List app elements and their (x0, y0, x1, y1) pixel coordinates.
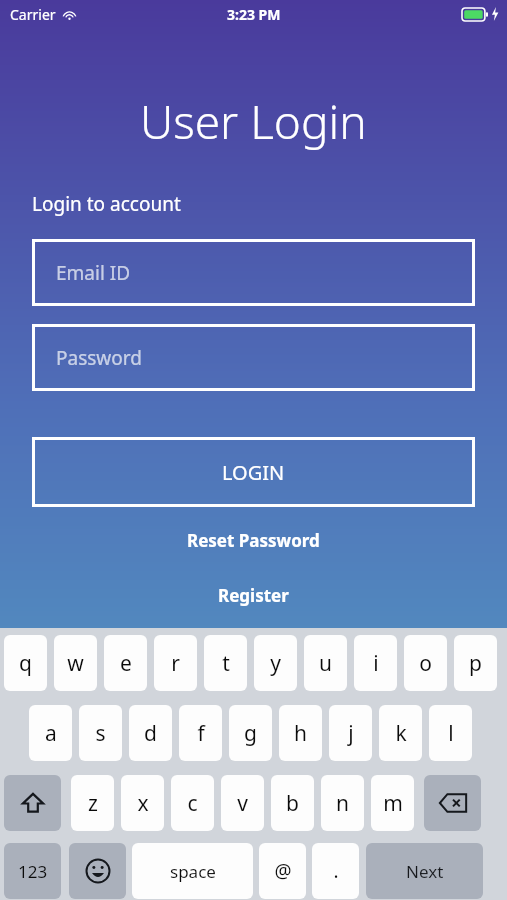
button[interactable]: e (104, 635, 147, 691)
button[interactable]: o (404, 635, 447, 691)
staticText: Login to account (32, 191, 181, 217)
button[interactable]: Emoji (69, 843, 126, 899)
button[interactable]: i (354, 635, 397, 691)
button[interactable]: b (271, 775, 314, 831)
button[interactable]: u (304, 635, 347, 691)
staticText: k (395, 719, 407, 748)
staticText: t (222, 649, 230, 678)
button[interactable]: Register (0, 584, 507, 607)
staticText: a (45, 719, 57, 748)
button[interactable]: Email ID (32, 239, 475, 306)
button[interactable]: z (71, 775, 114, 831)
staticText: s (95, 719, 106, 748)
button[interactable]: m (371, 775, 414, 831)
staticText: b (286, 789, 299, 818)
button[interactable]: p (454, 635, 497, 691)
button[interactable]: a (29, 705, 72, 761)
button[interactable]: Next (366, 843, 483, 899)
button[interactable]: Numbers (4, 843, 61, 899)
staticText: 123 (18, 860, 48, 883)
button[interactable]: Shift (4, 775, 61, 831)
button[interactable]: LOGIN (32, 437, 475, 507)
button[interactable]: t (204, 635, 247, 691)
staticText: Reset Password (187, 529, 320, 552)
staticText: n (336, 789, 349, 818)
button[interactable]: v (221, 775, 264, 831)
button[interactable]: f (179, 705, 222, 761)
button[interactable]: n (321, 775, 364, 831)
staticText: Email ID (56, 260, 131, 286)
staticText: @ (274, 858, 292, 884)
button[interactable]: s (79, 705, 122, 761)
staticText: y (270, 649, 281, 678)
staticText: Carrier (10, 5, 56, 24)
staticText: LOGIN (222, 459, 285, 486)
staticText: l (448, 719, 454, 748)
staticText: c (187, 789, 198, 818)
staticText: g (244, 719, 257, 748)
staticText: z (88, 789, 98, 818)
staticText: Register (218, 584, 289, 607)
staticText: p (469, 649, 482, 678)
button[interactable]: @ (259, 843, 306, 899)
staticText: d (144, 719, 157, 748)
button[interactable]: Password (32, 324, 475, 391)
staticText: v (237, 789, 248, 818)
button[interactable]: space (132, 843, 253, 899)
button[interactable]: h (279, 705, 322, 761)
button[interactable]: r (154, 635, 197, 691)
button[interactable]: . (312, 843, 359, 899)
button[interactable]: q (4, 635, 47, 691)
staticText: 3:23 PM (227, 5, 281, 24)
button[interactable]: j (329, 705, 372, 761)
button[interactable]: d (129, 705, 172, 761)
button[interactable]: w (54, 635, 97, 691)
staticText: i (373, 649, 379, 678)
button[interactable]: k (379, 705, 422, 761)
button[interactable]: Backspace (424, 775, 481, 831)
staticText: j (348, 719, 354, 748)
staticText: o (419, 649, 432, 678)
staticText: q (19, 649, 32, 678)
button[interactable]: g (229, 705, 272, 761)
button[interactable]: y (254, 635, 297, 691)
button[interactable]: x (121, 775, 164, 831)
staticText: Next (406, 860, 444, 883)
staticText: x (137, 789, 149, 818)
staticText: . (333, 858, 339, 884)
staticText: space (170, 860, 216, 883)
staticText: f (197, 719, 205, 748)
staticText: r (171, 649, 180, 678)
button[interactable]: Reset Password (0, 529, 507, 552)
button[interactable]: l (429, 705, 472, 761)
staticText: Password (56, 345, 142, 371)
button[interactable]: c (171, 775, 214, 831)
staticText: e (120, 649, 132, 678)
staticText: w (67, 649, 84, 678)
staticText: u (319, 649, 332, 678)
staticText: m (383, 789, 403, 818)
staticText: h (294, 719, 307, 748)
staticText: User Login (140, 90, 367, 153)
